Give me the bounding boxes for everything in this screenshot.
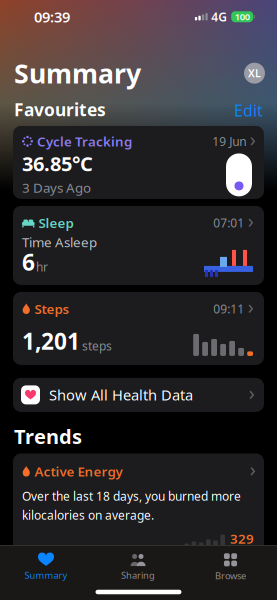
staticText: Favourites (14, 98, 106, 121)
staticText: 3 Days Ago (22, 179, 91, 196)
staticText: Sleep (39, 214, 74, 232)
staticText: Summary (14, 55, 141, 91)
staticText: steps (82, 338, 112, 354)
staticText: Browse (215, 569, 246, 582)
button[interactable]: Cycle Tracking (13, 126, 264, 199)
button[interactable]: Active Energy (13, 453, 264, 599)
staticText: kilocalories on average. (22, 507, 154, 523)
button[interactable]: Browse (184, 550, 277, 584)
button[interactable]: Summary (0, 550, 92, 584)
button[interactable]: Show All Health Data (13, 378, 264, 412)
staticText: Active Energy (34, 462, 122, 480)
staticText: Summary (24, 569, 67, 581)
staticText: Cycle Tracking (37, 132, 132, 150)
staticText: 19 Jun (212, 133, 246, 149)
staticText: 09:11 (213, 301, 244, 317)
staticText: 1,201 (22, 326, 80, 356)
button[interactable]: Sleep (13, 206, 264, 285)
staticText: 6 (22, 247, 35, 277)
staticText: 329 (230, 530, 254, 547)
staticText: 100 (235, 10, 250, 23)
button[interactable]: Steps (13, 292, 264, 365)
staticText: 36.85°C (22, 150, 93, 177)
staticText: Trends (14, 423, 82, 449)
button[interactable]: Sharing (92, 550, 184, 584)
staticText: Steps (34, 300, 69, 318)
staticText: XL (248, 66, 261, 80)
staticText: Time Asleep (22, 233, 97, 251)
staticText: 4G (211, 9, 227, 25)
button[interactable]: Edit (234, 100, 263, 121)
staticText: Over the last 18 days, you burned more (22, 488, 241, 504)
staticText: hr (36, 259, 48, 275)
staticText: Edit (234, 100, 263, 121)
staticText: 09:39 (34, 7, 70, 26)
staticText: Show All Health Data (49, 385, 193, 405)
staticText: Sharing (121, 569, 155, 581)
staticText: 07:01 (213, 215, 244, 231)
button[interactable]: Profile (244, 63, 265, 84)
